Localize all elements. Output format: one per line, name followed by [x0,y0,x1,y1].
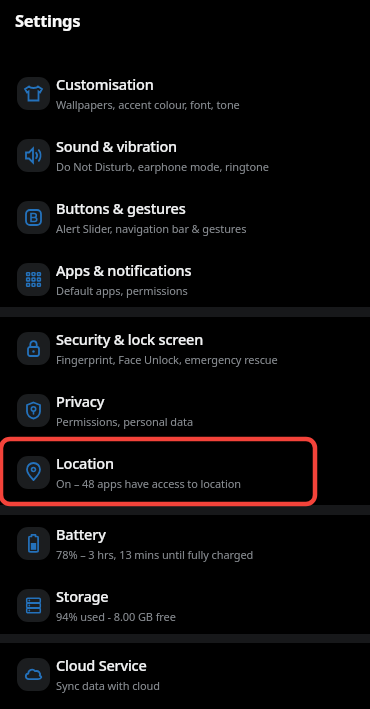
button[interactable]: Sound & vibration [0,124,370,186]
staticText: Security & lock screen [56,329,204,349]
button[interactable]: Customisation [0,62,370,124]
button[interactable]: Security & lock screen [0,317,370,379]
staticText: Alert Slider, navigation bar & gestures [56,221,247,236]
staticText: 94% used - 8.00 GB free [56,609,176,624]
button[interactable]: Battery [0,512,370,574]
button[interactable]: Storage [0,574,370,636]
button[interactable]: Cloud Service [0,643,370,705]
staticText: Sound & vibration [56,136,177,156]
button[interactable]: Apps & notifications [0,248,370,310]
staticText: Do Not Disturb, earphone mode, ringtone [56,159,269,174]
staticText: Default apps, permissions [56,283,188,298]
staticText: Storage [56,586,109,606]
button[interactable]: Buttons & gestures [0,186,370,248]
staticText: Apps & notifications [56,260,192,280]
staticText: Permissions, personal data [56,414,194,429]
staticText: Fingerprint, Face Unlock, emergency resc… [56,352,278,367]
staticText: Cloud Service [56,655,147,675]
staticText: Sync data with cloud [56,678,160,693]
button[interactable]: Location [0,441,370,503]
staticText: Buttons & gestures [56,198,186,218]
staticText: 78% – 3 hrs, 13 mins until fully charged [56,547,254,562]
staticText: Battery [56,524,106,544]
staticText: Customisation [56,74,154,94]
staticText: Location [56,453,114,473]
staticText: Privacy [56,391,105,411]
button[interactable]: Privacy [0,379,370,441]
staticText: Settings [15,9,81,31]
staticText: Wallpapers, accent colour, font, tone [56,97,240,112]
staticText: On – 48 apps have access to location [56,476,241,491]
